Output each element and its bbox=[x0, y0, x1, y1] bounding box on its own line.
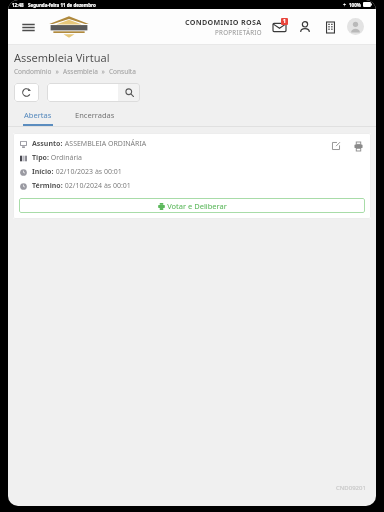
button[interactable]: Atualizar bbox=[14, 83, 39, 102]
staticText: Segunda-feira 11 de dezembro bbox=[28, 2, 96, 8]
button[interactable]: Pesquisar bbox=[118, 83, 140, 102]
staticText: CND09201 bbox=[336, 484, 366, 492]
button[interactable]: Abertas bbox=[18, 110, 58, 126]
staticText: 02/10/2024 às 00:01 bbox=[63, 181, 131, 191]
staticText: Término: bbox=[32, 181, 63, 191]
button[interactable]: Perfil bbox=[297, 19, 313, 35]
staticText: Assembleia Virtual bbox=[14, 50, 110, 65]
button[interactable]: Menu bbox=[20, 19, 36, 35]
staticText: PROPRIETÁRIO bbox=[215, 28, 262, 36]
staticText: ASSEMBLEIA ORDINÁRIA bbox=[63, 139, 147, 149]
staticText: CONDOMINIO ROSA bbox=[185, 17, 262, 27]
staticText: Assembleia bbox=[63, 67, 98, 76]
button[interactable]: Conta bbox=[347, 18, 364, 35]
staticText: 02/10/2023 às 00:01 bbox=[54, 167, 122, 177]
button[interactable]: Encerradas bbox=[70, 110, 120, 126]
button[interactable]: Condomínio bbox=[322, 19, 338, 35]
button[interactable]: Abrir bbox=[329, 139, 343, 153]
staticText: » bbox=[52, 67, 63, 76]
button[interactable]: Imprimir bbox=[351, 139, 365, 153]
staticText: Abertas bbox=[24, 110, 52, 120]
staticText: Votar e Deliberar bbox=[167, 201, 227, 211]
staticText: Consulta bbox=[109, 67, 136, 76]
button[interactable]: Votar e Deliberar bbox=[19, 198, 365, 213]
staticText: 1 bbox=[283, 18, 286, 25]
staticText: Condomínio bbox=[14, 67, 52, 76]
staticText: Ordinária bbox=[49, 153, 83, 163]
button[interactable] bbox=[47, 83, 118, 102]
button[interactable]: Mensagens bbox=[270, 18, 288, 36]
staticText: » bbox=[98, 67, 109, 76]
staticText: Assunto: bbox=[32, 139, 63, 149]
staticText: Início: bbox=[32, 167, 54, 177]
staticText: Tipo: bbox=[32, 153, 49, 163]
staticText: 100% bbox=[349, 2, 361, 8]
staticText: Encerradas bbox=[75, 110, 115, 120]
staticText: 12:48 bbox=[12, 2, 24, 8]
